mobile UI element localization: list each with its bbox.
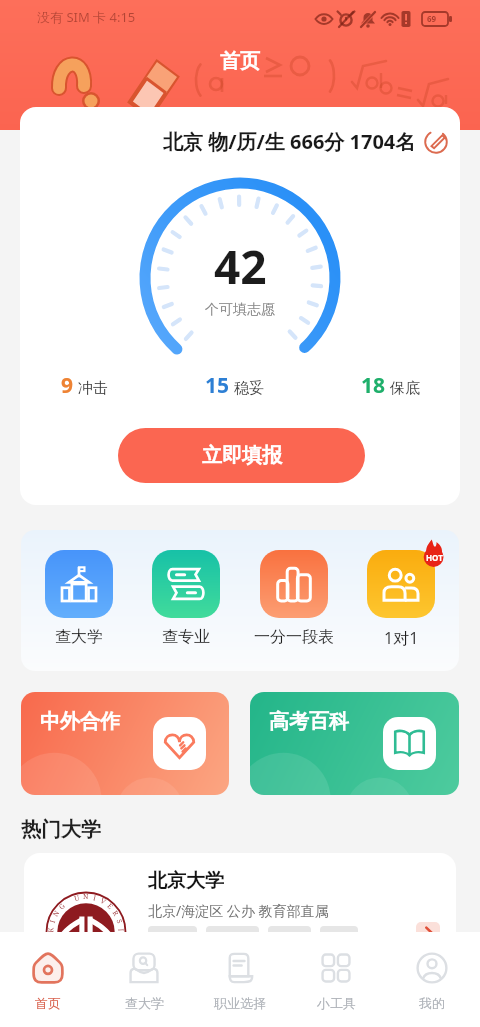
button[interactable]: 一分一段表	[244, 550, 344, 647]
staticText: 没有 SIM 卡 4:15	[37, 8, 136, 26]
button[interactable]: 首页	[0, 952, 96, 1027]
button[interactable]: 小工具	[288, 952, 384, 1027]
staticText: 1对1	[384, 627, 419, 649]
staticText: 15	[205, 371, 230, 400]
button[interactable]: 编辑	[424, 130, 448, 154]
staticText: 9	[61, 371, 74, 400]
button[interactable]: 北京大学	[24, 853, 456, 963]
button[interactable]: 查看更多	[416, 922, 440, 941]
staticText: HOT	[426, 552, 443, 563]
button[interactable]: 查大学	[29, 550, 129, 647]
staticText: 查专业	[162, 627, 210, 647]
staticText: 热门大学	[21, 817, 101, 842]
staticText: 一分一段表	[254, 627, 334, 647]
button[interactable]: 查专业	[136, 550, 236, 647]
button[interactable]: 中外合作	[21, 692, 229, 795]
staticText: 北京 物/历/生 666分 1704名	[163, 128, 416, 155]
staticText: 北京/海淀区 公办 教育部直属	[148, 901, 329, 920]
staticText: 查大学	[125, 995, 164, 1011]
staticText: 小工具	[317, 995, 356, 1011]
staticText: 冲击	[78, 379, 108, 398]
button[interactable]: 我的	[384, 952, 480, 1027]
staticText: 18	[361, 371, 386, 400]
button[interactable]: 职业选择	[192, 952, 288, 1027]
staticText: 中外合作	[40, 709, 120, 734]
staticText: 保底	[390, 379, 420, 398]
staticText: 北京大学	[148, 869, 224, 893]
staticText: 高考百科	[269, 709, 349, 734]
button[interactable]: 立即填报	[118, 428, 365, 483]
staticText: 稳妥	[234, 379, 264, 398]
staticText: 职业选择	[214, 995, 266, 1011]
staticText: 42	[214, 235, 267, 298]
staticText: 首页	[220, 49, 260, 74]
staticText: 我的	[419, 995, 445, 1011]
staticText: 查大学	[55, 627, 103, 647]
staticText: 个可填志愿	[205, 301, 275, 319]
staticText: 首页	[35, 995, 61, 1011]
staticText: 立即填报	[202, 443, 282, 468]
staticText: 69	[427, 13, 437, 24]
button[interactable]: HOT	[351, 550, 451, 649]
button[interactable]: 高考百科	[250, 692, 459, 795]
button[interactable]: 查大学	[96, 952, 192, 1027]
